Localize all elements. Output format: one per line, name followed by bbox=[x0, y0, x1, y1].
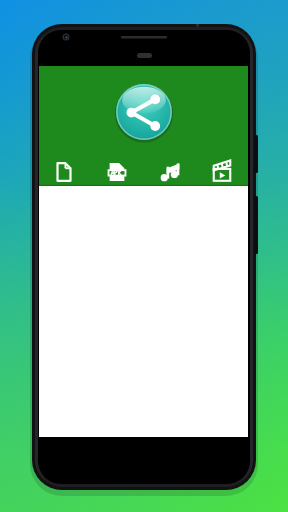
button[interactable]: Documents bbox=[39, 152, 91, 186]
button[interactable]: APK files bbox=[91, 152, 143, 186]
button[interactable]: Share bbox=[108, 76, 180, 148]
button[interactable]: Videos bbox=[196, 152, 248, 186]
button[interactable]: Music bbox=[144, 152, 196, 186]
